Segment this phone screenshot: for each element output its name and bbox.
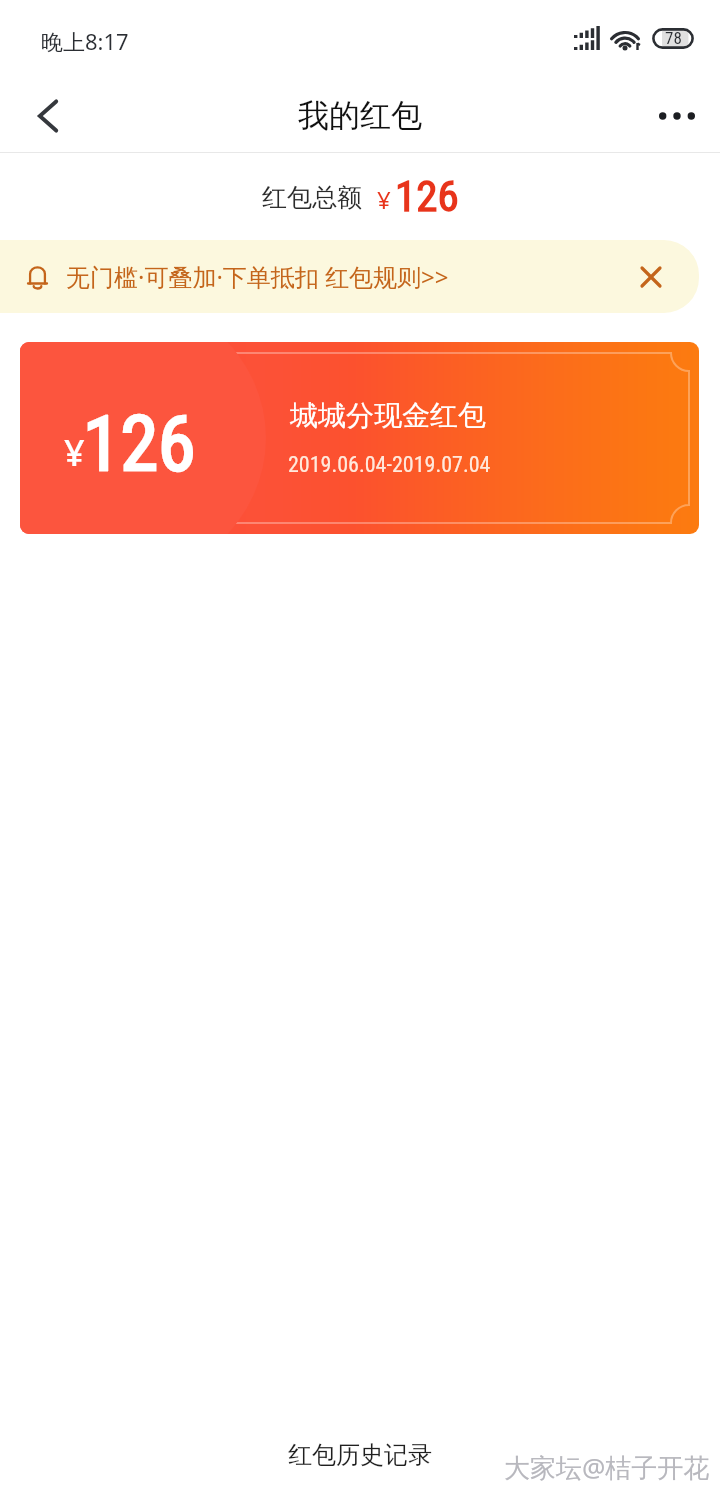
staticText: 大家坛@桔子开花 — [504, 1449, 710, 1485]
staticText: ¥ — [64, 428, 85, 477]
staticText: 126 — [83, 399, 196, 488]
button[interactable]: Back — [14, 81, 84, 151]
button[interactable]: Close — [629, 255, 673, 299]
staticText: 2019.06.04-2019.07.04 — [288, 452, 491, 478]
button[interactable]: ¥ — [20, 342, 699, 534]
staticText: 红包历史记录 — [288, 1440, 432, 1470]
button[interactable]: 无门槛·可叠加·下单抵扣 红包规则>> — [0, 240, 699, 313]
staticText: 78 — [665, 28, 682, 48]
staticText: 126 — [395, 171, 459, 221]
staticText: 我的红包 — [298, 96, 422, 135]
staticText: 城城分现金红包 — [290, 398, 486, 433]
button[interactable]: 红包历史记录 — [0, 1427, 720, 1483]
staticText: 晚上8:17 — [41, 26, 129, 56]
button[interactable]: More options — [642, 81, 712, 151]
staticText: ¥ — [377, 183, 391, 216]
staticText: 红包总额 — [262, 182, 362, 213]
staticText: 无门槛·可叠加·下单抵扣 红包规则>> — [66, 260, 449, 293]
